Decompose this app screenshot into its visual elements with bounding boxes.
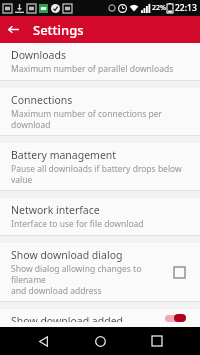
staticText: Maximum number of parallel downloads: [11, 63, 174, 75]
staticText: 22:13: [175, 2, 197, 14]
button[interactable]: Recents: [143, 327, 171, 355]
button[interactable]: Show download dialog: [0, 243, 200, 301]
button[interactable]: Downloads: [0, 43, 200, 80]
button[interactable]: Back: [29, 327, 57, 355]
staticText: 22%: [152, 3, 166, 13]
button[interactable]: Connections: [0, 88, 200, 135]
button[interactable]: Show download added message toggle: [158, 314, 192, 322]
button[interactable]: Show download added message: [0, 309, 200, 327]
staticText: Battery management: [11, 148, 117, 162]
staticText: Interface to use for file download: [11, 218, 144, 230]
staticText: Pause all downloads if battery drops bel…: [11, 163, 192, 185]
staticText: Maximum number of connections per downlo…: [11, 108, 192, 130]
button[interactable]: Show download dialog toggle: [166, 259, 192, 285]
staticText: Downloads: [11, 48, 66, 62]
staticText: Settings: [33, 21, 84, 39]
staticText: Show dialog allowing changes to filename…: [11, 263, 162, 296]
button[interactable]: Back: [0, 16, 27, 43]
staticText: Show download added message: [11, 314, 154, 322]
button[interactable]: Battery management: [0, 143, 200, 190]
staticText: Connections: [11, 93, 73, 107]
button[interactable]: Home: [86, 327, 114, 355]
button[interactable]: Network interface: [0, 198, 200, 235]
staticText: Show download dialog: [11, 248, 123, 262]
staticText: Network interface: [11, 203, 100, 217]
